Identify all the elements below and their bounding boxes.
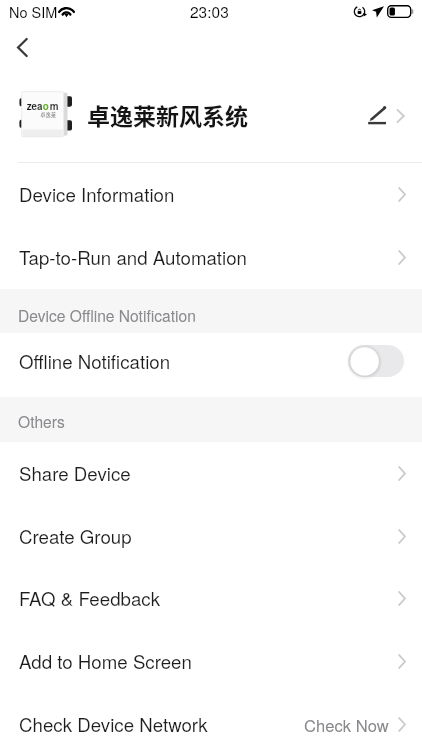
button[interactable]: Back bbox=[2, 27, 42, 67]
button[interactable]: Add to Home Screen bbox=[0, 630, 422, 693]
staticText: Tap-to-Run and Automation bbox=[19, 244, 247, 271]
staticText: Device Offline Notification bbox=[18, 304, 196, 326]
staticText: FAQ & Feedback bbox=[19, 585, 161, 612]
button[interactable]: Check Device Network bbox=[0, 693, 422, 750]
staticText: 23:03 bbox=[190, 0, 229, 22]
button[interactable]: Device Information bbox=[0, 163, 422, 226]
button[interactable]: Offline Notification toggle bbox=[348, 345, 404, 377]
staticText: Check Device Network bbox=[19, 711, 208, 738]
staticText: Others bbox=[18, 410, 65, 432]
button[interactable]: Offline Notification bbox=[0, 329, 422, 393]
staticText: Offline Notification bbox=[19, 348, 171, 375]
button[interactable]: Rename device bbox=[362, 101, 390, 129]
staticText: Check Now bbox=[304, 713, 389, 737]
staticText: 卓逸莱新风系统 bbox=[87, 98, 248, 131]
staticText: Device Information bbox=[19, 181, 175, 208]
staticText: Add to Home Screen bbox=[19, 648, 192, 675]
button[interactable]: Share Device bbox=[0, 442, 422, 505]
button[interactable]: Create Group bbox=[0, 505, 422, 568]
staticText: Create Group bbox=[19, 523, 132, 550]
button[interactable]: FAQ & Feedback bbox=[0, 567, 422, 630]
staticText: Share Device bbox=[19, 460, 131, 487]
button[interactable]: Tap-to-Run and Automation bbox=[0, 226, 422, 289]
button[interactable]: 卓逸莱新风系统 bbox=[0, 72, 422, 156]
staticText: No SIM bbox=[9, 1, 58, 22]
